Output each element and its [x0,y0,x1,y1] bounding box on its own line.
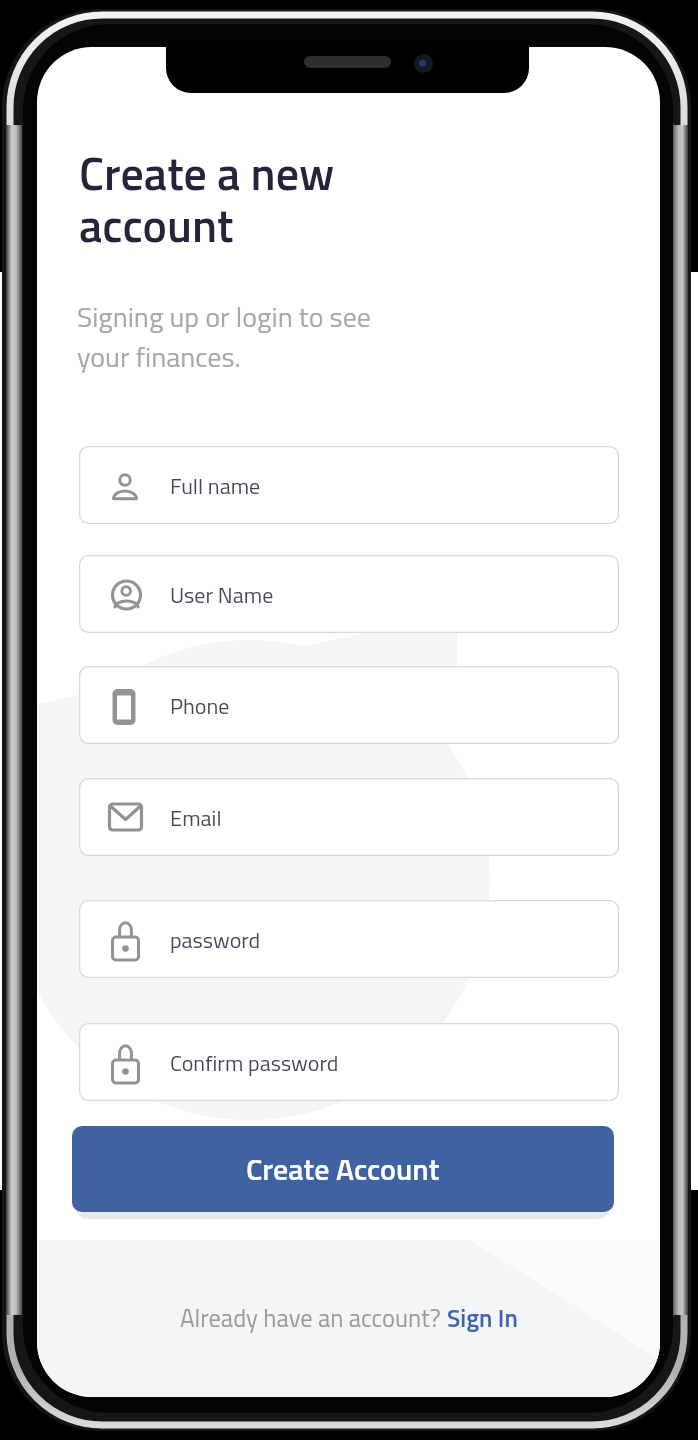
staticText: Email [170,801,222,834]
staticText: Full name [170,469,261,502]
button[interactable]: Create Account [72,1126,614,1212]
button[interactable]: Full name [79,446,619,524]
staticText: Phone [170,689,230,722]
button[interactable]: Phone [79,666,619,744]
button[interactable]: Sign In [447,1299,518,1336]
staticText: Create a new account [79,138,335,260]
staticText: User Name [170,578,274,611]
button[interactable]: User Name [79,555,619,633]
staticText: password [170,923,261,956]
staticText: Create Account [246,1146,440,1192]
button[interactable]: Confirm password [79,1023,619,1101]
staticText: Confirm password [170,1046,339,1079]
staticText: Signing up or login to see your finances… [77,295,371,378]
button[interactable]: Email [79,778,619,856]
staticText: Already have an account? [180,1299,447,1336]
button[interactable]: password [79,900,619,978]
